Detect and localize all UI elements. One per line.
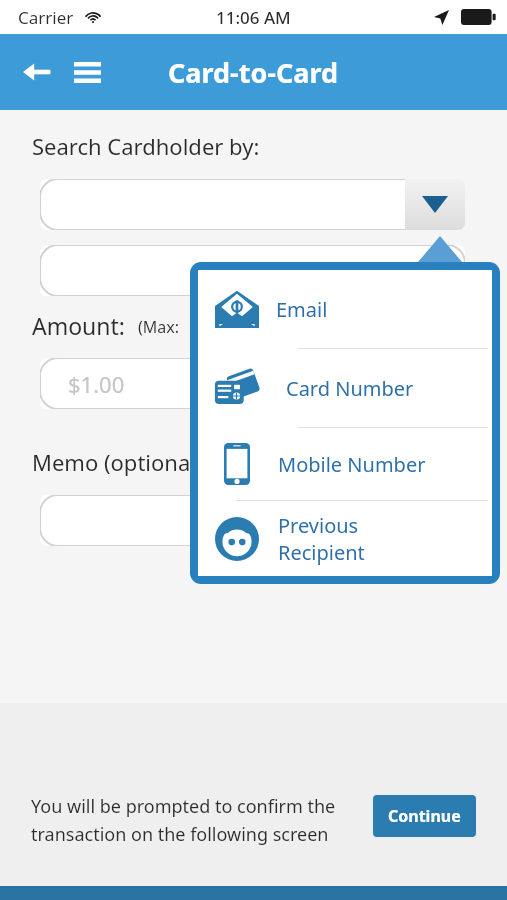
button[interactable]: Previous	[198, 501, 492, 576]
button[interactable]	[40, 179, 465, 230]
button[interactable]: Mobile Number	[198, 428, 492, 500]
button[interactable]: Back	[14, 49, 60, 95]
staticText: Carrier	[18, 6, 74, 29]
staticText: Recipient	[278, 539, 365, 566]
button[interactable]: Card Number	[198, 349, 492, 427]
staticText: transaction on the following screen	[31, 822, 329, 847]
button[interactable]	[40, 245, 465, 296]
staticText: Search Cardholder by:	[32, 131, 260, 161]
staticText: Continue	[388, 805, 461, 827]
staticText: $1.00	[68, 369, 125, 399]
staticText: Card-to-Card	[168, 54, 339, 91]
button[interactable]	[40, 495, 465, 546]
button[interactable]: Email	[198, 270, 492, 348]
staticText: Previous	[278, 512, 359, 539]
staticText: (Max:	[138, 316, 180, 338]
staticText: Memo (optional)	[32, 447, 203, 477]
staticText: Email	[276, 296, 328, 323]
staticText: 11:06 AM	[216, 6, 291, 29]
staticText: Card Number	[286, 375, 414, 402]
button[interactable]: Menu	[64, 49, 110, 95]
staticText: Mobile Number	[278, 451, 426, 478]
staticText: Amount:	[32, 310, 126, 341]
button[interactable]	[40, 358, 465, 409]
button[interactable]: Continue	[373, 795, 476, 837]
staticText: You will be prompted to confirm the	[31, 794, 336, 819]
